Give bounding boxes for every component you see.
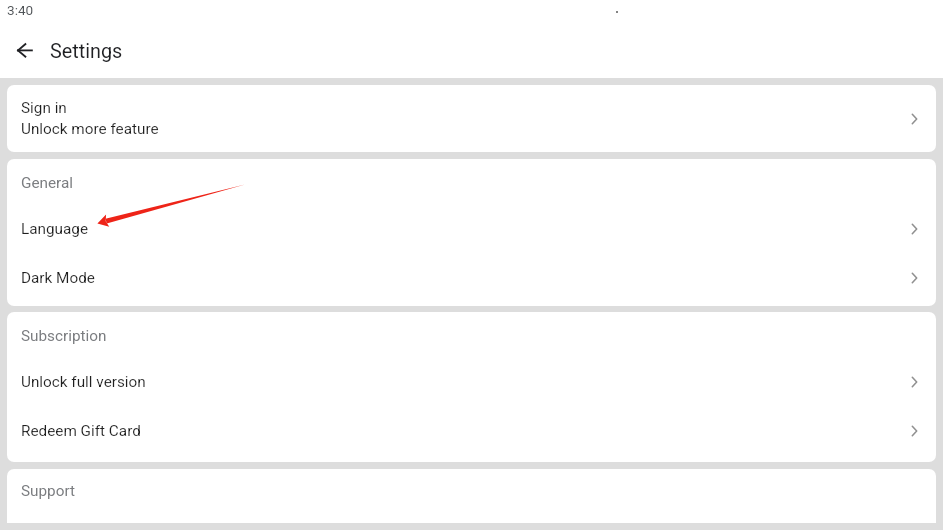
staticText: Dark Mode [21, 269, 95, 287]
staticText: Settings [50, 40, 123, 63]
staticText: General [21, 174, 74, 192]
button[interactable]: Redeem Gift Card [7, 416, 936, 446]
button[interactable]: Unlock full version [7, 367, 936, 397]
staticText: Subscription [21, 327, 107, 345]
button[interactable]: Dark Mode [7, 263, 936, 293]
button[interactable]: Back [7, 32, 43, 68]
staticText: Unlock full version [21, 373, 146, 391]
button[interactable]: Sign in [7, 85, 936, 152]
button[interactable]: Language [7, 214, 936, 244]
staticText: Unlock more feature [21, 120, 159, 138]
staticText: Sign in [21, 99, 67, 117]
staticText: Support [21, 482, 75, 500]
staticText: 3:40 [7, 2, 34, 18]
staticText: Language [21, 220, 89, 238]
staticText: Redeem Gift Card [21, 422, 141, 440]
